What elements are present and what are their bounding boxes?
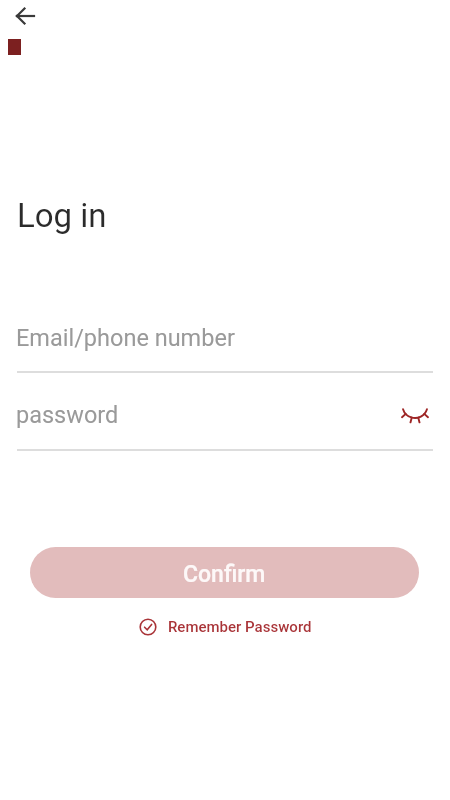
button[interactable] [12, 4, 38, 28]
staticText: password [16, 401, 119, 429]
staticText: Confirm [183, 561, 266, 588]
staticText: Log in [17, 196, 107, 235]
staticText: Remember Password [168, 618, 312, 636]
button[interactable] [0, 320, 450, 372]
button[interactable]: Confirm [30, 547, 419, 598]
staticText: Email/phone number [16, 324, 235, 352]
button[interactable]: Remember Password [139, 618, 312, 636]
button[interactable] [400, 403, 430, 427]
button[interactable] [0, 398, 450, 450]
